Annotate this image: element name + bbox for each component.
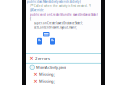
button[interactable]: MainActivity.java [26, 64, 101, 71]
staticText: Missing ; [39, 79, 55, 84]
staticText: @Override [30, 8, 44, 12]
staticText: public class MainActivity extends Activi… [27, 0, 81, 3]
staticText: ✕ [29, 55, 33, 61]
button[interactable]: ✕ [26, 78, 101, 85]
staticText: 2 errors [35, 56, 50, 61]
staticText: MainActivity.java [36, 65, 66, 70]
staticText: public void onCreate(Bundle savedInstanc… [30, 13, 98, 16]
staticText: { [30, 17, 31, 21]
staticText: setContentView(R.layout.main); [34, 26, 77, 29]
staticText: super.onCreate(savedInstanceState); [34, 21, 83, 25]
button[interactable]: ✕ [26, 71, 101, 78]
staticText: ✕ [33, 78, 37, 84]
button[interactable]: ✕ [26, 54, 101, 63]
staticText: Missing ; [39, 72, 55, 77]
staticText: ✕ [33, 71, 37, 77]
staticText: /** Called when the activity is first cr… [30, 4, 91, 8]
